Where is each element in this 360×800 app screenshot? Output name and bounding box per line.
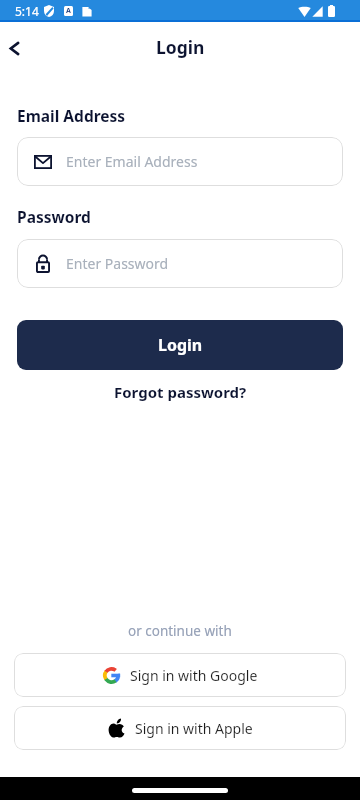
button[interactable]: Sign in with Google — [14, 653, 346, 697]
staticText: or continue with — [128, 622, 232, 640]
staticText: Sign in with Apple — [135, 719, 253, 738]
button[interactable]: Login — [17, 320, 343, 370]
staticText: Enter Email Address — [66, 152, 198, 171]
button[interactable]: Enter Password — [17, 239, 343, 288]
button[interactable]: Forgot password? — [114, 382, 247, 402]
staticText: Sign in with Google — [130, 666, 258, 685]
staticText: Email Address — [17, 105, 126, 126]
button[interactable]: Back — [0, 26, 28, 70]
button[interactable]: Sign in with Apple — [14, 706, 346, 750]
staticText: Login — [156, 35, 205, 59]
staticText: Enter Password — [66, 254, 169, 273]
staticText: Login — [158, 334, 203, 356]
staticText: 5:14 — [15, 3, 39, 19]
staticText: A — [66, 6, 71, 16]
button[interactable]: Enter Email Address — [17, 137, 343, 186]
staticText: Password — [17, 206, 91, 227]
